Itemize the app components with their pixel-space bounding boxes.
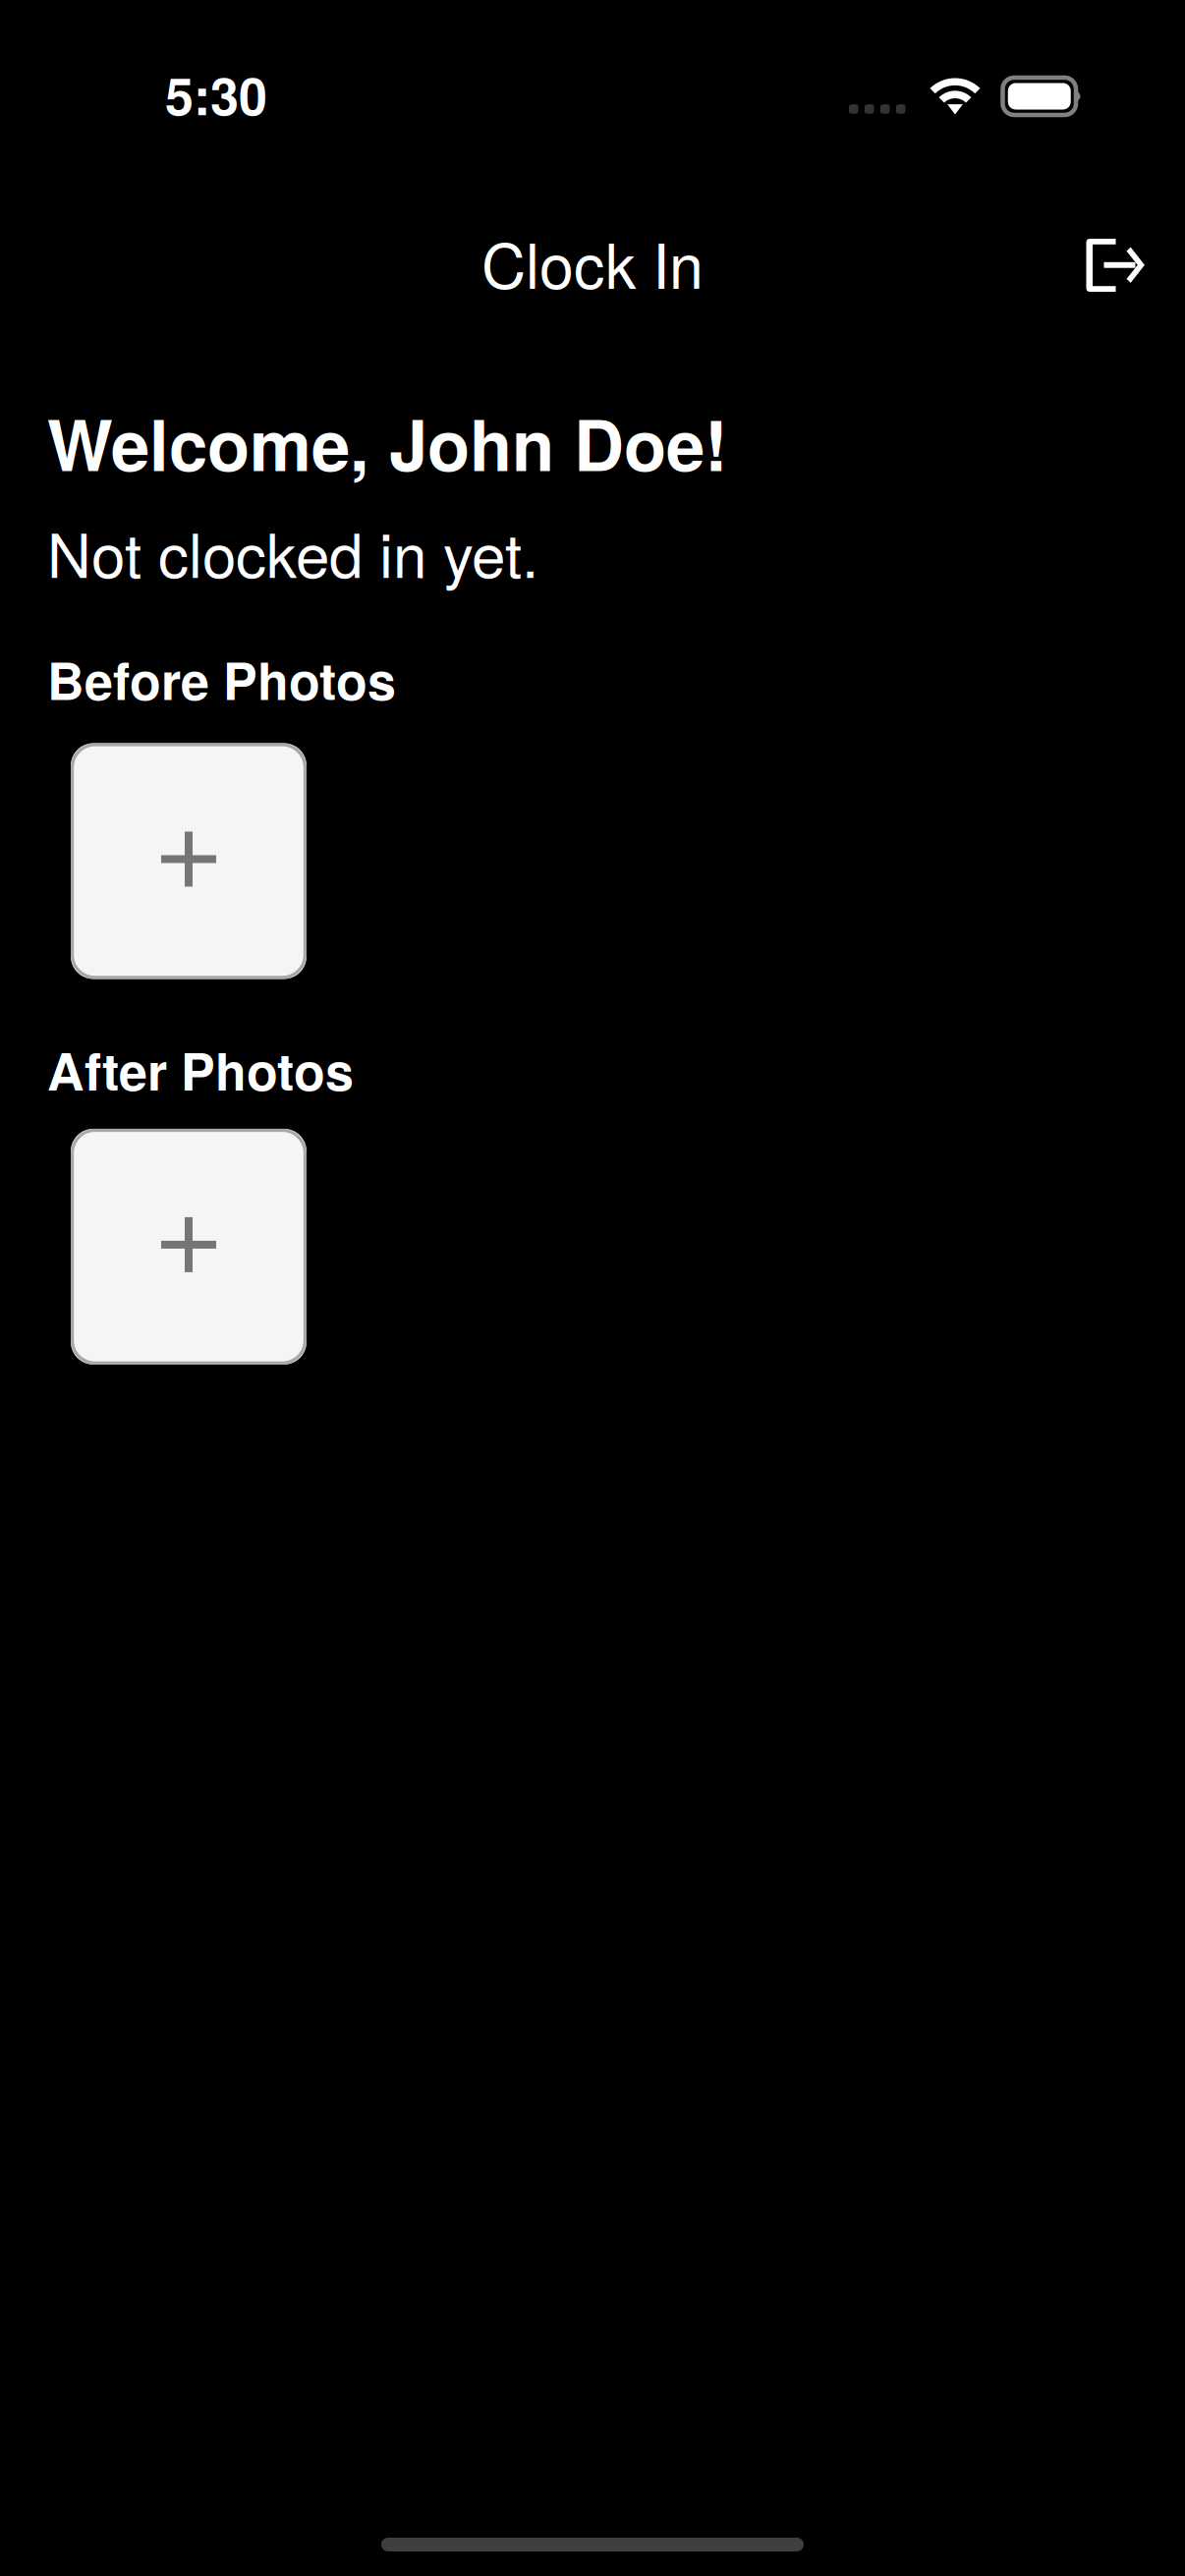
staticText: Not clocked in yet.	[47, 508, 538, 595]
staticText: After Photos	[47, 1033, 354, 1106]
staticText: Clock In	[481, 218, 704, 306]
button[interactable]: Add photo	[71, 743, 307, 979]
staticText: 5:30	[165, 58, 267, 131]
staticText: Before Photos	[47, 643, 396, 716]
button[interactable]: Log out	[1071, 230, 1159, 308]
button[interactable]: Add photo	[71, 1129, 307, 1365]
staticText: Welcome, John Doe!	[47, 393, 728, 492]
